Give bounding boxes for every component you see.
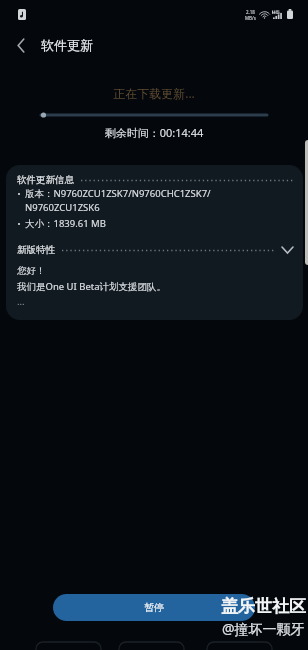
button[interactable]: Recents (36, 642, 101, 650)
staticText: 软件更新信息 (17, 174, 74, 186)
staticText: @撞坏一颗牙 (222, 619, 305, 638)
button[interactable]: Back (207, 642, 272, 650)
staticText: 版本：N9760ZCU1ZSK7/N9760CHC1ZSK7/ (25, 187, 211, 200)
button[interactable]: Expand (279, 242, 295, 258)
staticText: 2.18 (246, 9, 255, 15)
staticText: 您好！ (17, 265, 46, 277)
staticText: 剩余时间：00:14:44 (0, 125, 308, 140)
staticText: 正在下载更新... (0, 85, 308, 101)
staticText: 软件更新 (41, 37, 93, 53)
staticText: 暂停 (144, 601, 164, 614)
button[interactable]: Home (119, 642, 184, 650)
button[interactable]: Back (7, 31, 35, 59)
staticText: 大小：1839.61 MB (25, 217, 106, 230)
staticText: 盖乐世社区 (221, 596, 306, 617)
staticText: 我们是One UI Beta计划支援团队。 (17, 280, 167, 293)
staticText: 新版特性 (17, 244, 55, 256)
staticText: N9760ZCU1ZSK6 (25, 201, 100, 214)
button[interactable]: 暂停 (53, 594, 255, 621)
staticText: MB/s (245, 15, 256, 21)
staticText: ... (17, 295, 25, 308)
